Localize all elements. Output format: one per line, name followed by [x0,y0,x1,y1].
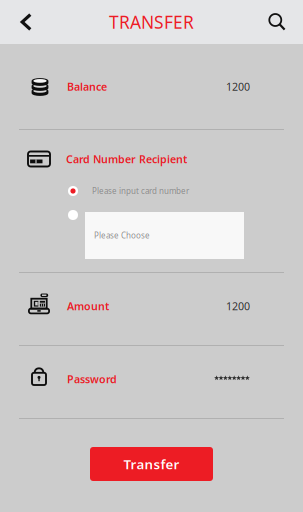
staticText: Transfer [123,455,179,473]
button[interactable]: Transfer [90,447,213,481]
staticText: Password [67,372,117,386]
button[interactable]: Password [0,346,303,418]
staticText: Amount [67,299,109,313]
staticText: Please input card number [92,186,189,196]
staticText: 1200 [226,299,250,313]
button[interactable]: Please input card number [0,178,303,201]
staticText: Card Number Recipient [66,152,187,166]
staticText: Please Choose [94,230,150,241]
button[interactable]: Back [0,0,52,44]
button[interactable]: Balance [0,44,303,129]
staticText: Balance [67,79,107,94]
staticText: TRANSFER [109,10,194,33]
button[interactable]: Please Choose [0,201,303,259]
button[interactable]: Amount [0,273,303,345]
button[interactable]: Search [251,0,303,44]
staticText: 1200 [226,79,250,94]
